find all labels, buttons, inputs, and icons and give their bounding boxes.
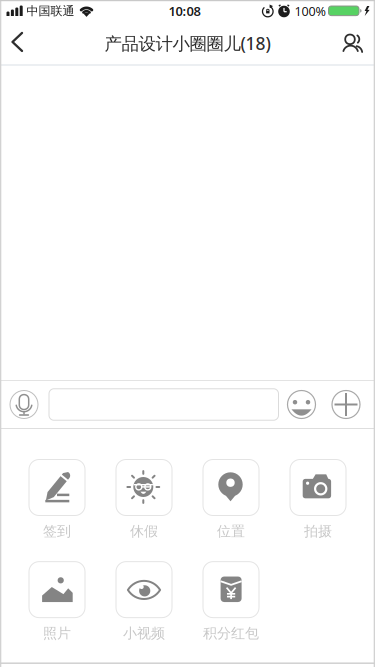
button[interactable]: Emoji xyxy=(287,390,316,419)
button[interactable]: More xyxy=(331,390,360,419)
staticText: 10:08 xyxy=(168,2,200,20)
button[interactable]: Voice message xyxy=(9,390,38,419)
staticText: 积分红包 xyxy=(203,625,259,642)
button[interactable]: Group members xyxy=(339,22,375,64)
button[interactable]: 拍摄 xyxy=(290,459,346,540)
button[interactable]: 照片 xyxy=(29,562,85,642)
button[interactable]: 积分红包 xyxy=(203,562,259,642)
staticText: 中国联通 xyxy=(26,3,74,18)
staticText: 产品设计小圈圈儿(18) xyxy=(104,31,270,55)
staticText: 100% xyxy=(294,2,325,20)
button[interactable]: 休假 xyxy=(116,459,172,540)
button[interactable]: 位置 xyxy=(203,459,259,540)
staticText: 休假 xyxy=(130,522,158,540)
button[interactable]: Back xyxy=(0,22,25,64)
staticText: 签到 xyxy=(43,522,71,540)
button[interactable]: 小视频 xyxy=(116,562,172,642)
staticText: 照片 xyxy=(43,625,71,642)
staticText: 小视频 xyxy=(123,625,165,642)
button[interactable]: 签到 xyxy=(29,459,85,540)
staticText: 拍摄 xyxy=(304,522,332,540)
staticText: 位置 xyxy=(217,522,245,540)
